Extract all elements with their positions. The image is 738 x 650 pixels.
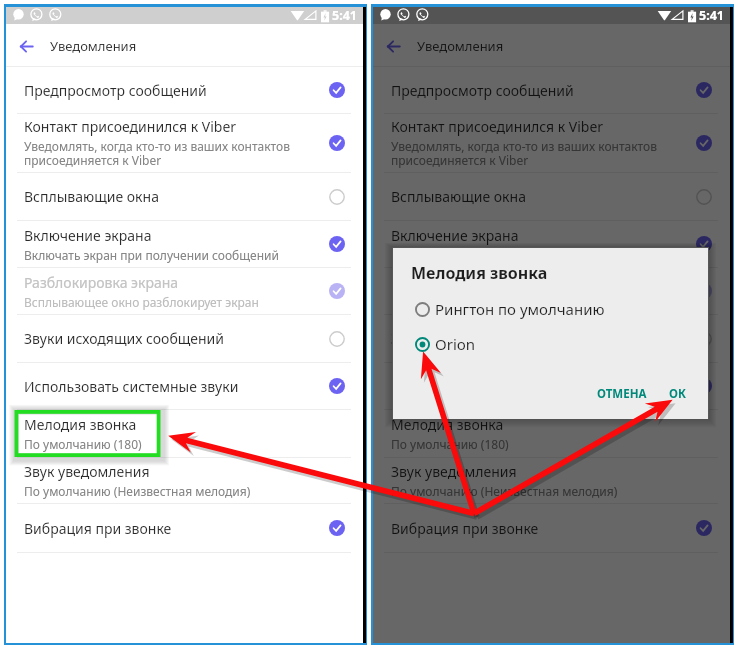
button[interactable]: Включение экрана (373, 221, 730, 267)
button[interactable]: Звук уведомления (373, 458, 730, 503)
staticText: Включать экран при получении сообщений (391, 247, 646, 263)
button[interactable]: Orion (393, 330, 708, 358)
button[interactable]: Контакт присоединился к Viber (373, 114, 730, 172)
staticText: По умолчанию (180) (24, 436, 142, 452)
staticText: Контакт присоединился к Viber (24, 117, 237, 136)
staticText: ОТМЕНА (597, 386, 647, 402)
staticText: Разблокировка экрана (391, 273, 546, 292)
staticText: Мелодия звонка (24, 415, 137, 434)
button[interactable]: Включение экрана (6, 221, 363, 267)
button[interactable]: ОТМЕНА (591, 381, 653, 407)
button[interactable]: Назад (377, 30, 409, 62)
button[interactable]: Предпросмотр сообщений (6, 67, 363, 113)
staticText: Предпросмотр сообщений (391, 81, 574, 100)
staticText: Звук уведомления (391, 462, 517, 481)
button[interactable]: Вибрация при звонке (6, 504, 363, 552)
staticText: 5:41 (332, 7, 357, 24)
button[interactable]: Использовать системные звуки (6, 363, 363, 409)
button[interactable]: Мелодия звонка (373, 410, 730, 457)
staticText: Звуки исходящих сообщений (391, 329, 592, 348)
button[interactable]: Разблокировка экрана (373, 268, 730, 314)
staticText: Звуки исходящих сообщений (24, 329, 225, 348)
staticText: Уведомлять, когда кто-то из ваших контак… (391, 138, 657, 169)
staticText: Контакт присоединился к Viber (391, 117, 604, 136)
staticText: Разблокировка экрана (24, 273, 179, 292)
button[interactable]: Контакт присоединился к Viber (6, 114, 363, 172)
staticText: Уведомлять, когда кто-то из ваших контак… (24, 138, 290, 169)
button[interactable]: Мелодия звонка (6, 410, 363, 457)
staticText: Всплывающее окно разблокирует экран (391, 294, 626, 310)
staticText: Всплывающее окно разблокирует экран (24, 294, 259, 310)
staticText: Мелодия звонка (411, 262, 548, 284)
button[interactable]: Назад (10, 30, 42, 62)
button[interactable]: Использовать системные звуки (373, 363, 730, 409)
staticText: Мелодия звонка (391, 415, 504, 434)
button[interactable]: Вибрация при звонке (373, 504, 730, 552)
button[interactable]: Разблокировка экрана (6, 268, 363, 314)
staticText: 5:41 (699, 7, 724, 24)
button[interactable]: Звуки исходящих сообщений (373, 315, 730, 362)
staticText: По умолчанию (Неизвестная мелодия) (24, 483, 251, 499)
staticText: Использовать системные звуки (391, 377, 606, 396)
staticText: Вибрация при звонке (24, 519, 172, 538)
button[interactable]: Звук уведомления (6, 458, 363, 503)
button[interactable]: Предпросмотр сообщений (373, 67, 730, 113)
staticText: Всплывающие окна (24, 187, 159, 206)
staticText: Уведомления (417, 37, 504, 55)
staticText: Включать экран при получении сообщений (24, 247, 279, 263)
staticText: По умолчанию (180) (391, 436, 509, 452)
button[interactable]: Звуки исходящих сообщений (6, 315, 363, 362)
staticText: Звук уведомления (24, 462, 150, 481)
button[interactable]: Всплывающие окна (6, 173, 363, 220)
staticText: Orion (435, 334, 476, 354)
staticText: Использовать системные звуки (24, 377, 239, 396)
staticText: Предпросмотр сообщений (24, 81, 207, 100)
button[interactable]: Рингтон по умолчанию (393, 295, 708, 323)
staticText: Включение экрана (391, 226, 519, 245)
staticText: Всплывающие окна (391, 187, 526, 206)
staticText: Рингтон по умолчанию (435, 299, 605, 319)
staticText: Вибрация при звонке (391, 519, 539, 538)
staticText: Включение экрана (24, 226, 152, 245)
staticText: ОК (669, 386, 686, 402)
button[interactable]: ОК (663, 381, 692, 407)
staticText: Уведомления (50, 37, 137, 55)
staticText: По умолчанию (Неизвестная мелодия) (391, 483, 618, 499)
button[interactable]: Всплывающие окна (373, 173, 730, 220)
